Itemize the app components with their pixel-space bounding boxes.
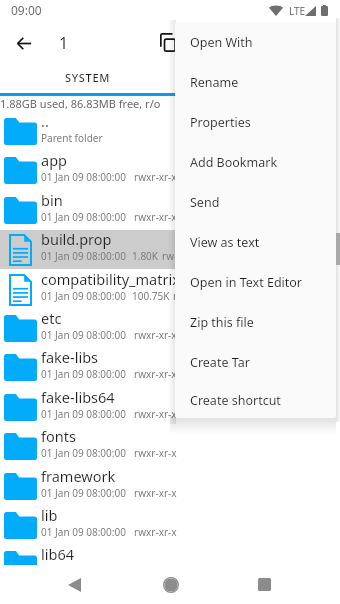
button[interactable]: Open With (175, 22, 336, 62)
button[interactable]: Send (175, 182, 336, 222)
staticText: rwxr-xr-x (134, 210, 177, 224)
staticText: Rename (190, 74, 239, 91)
staticText: Properties (190, 114, 251, 131)
staticText: Create shortcut (190, 392, 281, 409)
button[interactable]: SYSTEM (0, 62, 175, 92)
button[interactable]: View as text (175, 222, 336, 262)
staticText: SYSTEM (65, 70, 111, 85)
staticText: rwxr-xr-x (134, 407, 177, 421)
button[interactable]: lib64 (0, 545, 340, 584)
staticText: rwxr-xr-x (134, 170, 177, 184)
staticText: compatibility_matrix.xml (41, 269, 209, 289)
button[interactable]: Open in Text Editor (175, 262, 336, 302)
staticText: build.prop (41, 229, 112, 249)
staticText: rw-r--r-- (173, 289, 210, 303)
staticText: rw-r--r-- (162, 249, 199, 263)
staticText: Add Bookmark (190, 154, 278, 171)
staticText: 01 Jan 09 08:00:00 (41, 249, 126, 263)
button[interactable]: Back (58, 568, 91, 601)
staticText: LTE (289, 4, 306, 18)
button[interactable]: Back (8, 27, 40, 59)
staticText: app (41, 150, 67, 170)
staticText: Parent folder (41, 131, 103, 145)
button[interactable]: app (0, 151, 340, 190)
button[interactable]: bin (0, 191, 340, 230)
staticText: rwxr-xr-x (134, 525, 177, 539)
button[interactable]: fonts (0, 427, 340, 466)
button[interactable]: fake-libs64 (0, 388, 340, 427)
staticText: fake-libs (41, 347, 99, 367)
staticText: 01 Jan 09 08:00:00 (41, 486, 126, 500)
button[interactable]: Copy (152, 26, 184, 58)
staticText: 01 Jan 09 08:00:00 (41, 210, 126, 224)
staticText: View as text (190, 234, 260, 251)
staticText: 1.80K (132, 249, 159, 263)
staticText: rwxr-xr-x (134, 328, 177, 342)
staticText: lib (41, 505, 58, 525)
staticText: 1.88GB used, 86.83MB free, r/o (0, 96, 161, 111)
staticText: 01 Jan 09 08:00:00 (41, 289, 126, 303)
staticText: fake-libs64 (41, 387, 115, 407)
staticText: 01 Jan 09 08:00:00 (41, 446, 126, 460)
staticText: Create Tar (190, 354, 250, 371)
staticText: lib64 (41, 544, 74, 564)
button[interactable]: compatibility_matrix.xml (0, 270, 340, 309)
staticText: 1 (59, 32, 69, 54)
staticText: bin (41, 190, 63, 210)
button[interactable]: framework (0, 467, 340, 506)
staticText: 01 Jan 09 08:00:00 (41, 328, 126, 342)
staticText: rwxr-xr-x (134, 486, 177, 500)
staticText: 01 Jan 09 08:00:00 (41, 170, 126, 184)
staticText: .. (41, 111, 49, 131)
staticText: rwxr-xr-x (134, 367, 177, 381)
button[interactable]: Properties (175, 102, 336, 142)
staticText: fonts (41, 426, 76, 446)
staticText: 01 Jan 09 08:00:00 (41, 367, 126, 381)
button[interactable]: lib (0, 506, 340, 545)
staticText: etc (41, 308, 62, 328)
staticText: Open With (190, 34, 253, 51)
button[interactable]: Rename (175, 62, 336, 102)
button[interactable]: Zip this file (175, 302, 336, 342)
staticText: 01 Jan 09 08:00:00 (41, 525, 126, 539)
button[interactable]: Create shortcut (175, 382, 336, 418)
button[interactable]: Home (154, 568, 187, 601)
button[interactable]: fake-libs (0, 348, 340, 387)
button[interactable]: etc (0, 309, 340, 348)
button[interactable]: build.prop (0, 230, 340, 269)
staticText: 01 Jan 09 08:00:00 (41, 407, 126, 421)
staticText: rwxr-xr-x (134, 564, 177, 578)
button[interactable]: Create Tar (175, 342, 336, 382)
staticText: 100.75K (132, 289, 170, 303)
staticText: Zip this file (190, 314, 254, 331)
staticText: 09:00 (11, 2, 42, 18)
staticText: Open in Text Editor (190, 274, 303, 291)
staticText: Send (190, 194, 220, 211)
staticText: rwxr-xr-x (134, 446, 177, 460)
button[interactable]: .. (0, 112, 340, 151)
button[interactable]: Recents (248, 568, 281, 601)
staticText: framework (41, 466, 116, 486)
button[interactable]: Add Bookmark (175, 142, 336, 182)
